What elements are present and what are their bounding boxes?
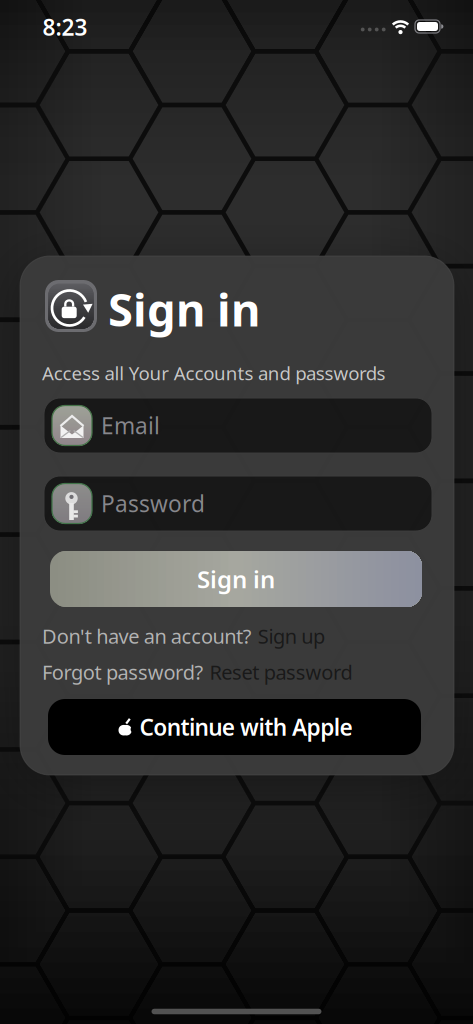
staticText: Sign up (258, 623, 325, 649)
staticText: Email (101, 410, 160, 440)
staticText: Don't have an account? (42, 623, 252, 649)
staticText: 8:23 (42, 12, 87, 42)
staticText: Access all Your Accounts and passwords (42, 361, 386, 385)
staticText: Sign in (197, 563, 275, 595)
staticText: Reset password (209, 659, 353, 685)
staticText: Continue with Apple (140, 712, 352, 742)
staticText: Password (101, 488, 205, 518)
button[interactable]: Email (44, 398, 432, 453)
button[interactable]: Reset password (209, 659, 353, 685)
button[interactable]: Sign up (258, 623, 325, 649)
staticText: Forgot password? (42, 659, 203, 685)
button[interactable]: Sign in (50, 551, 422, 607)
staticText: Sign in (108, 279, 260, 339)
button[interactable]: Password (44, 476, 432, 531)
button[interactable]: Continue with Apple (48, 699, 421, 755)
